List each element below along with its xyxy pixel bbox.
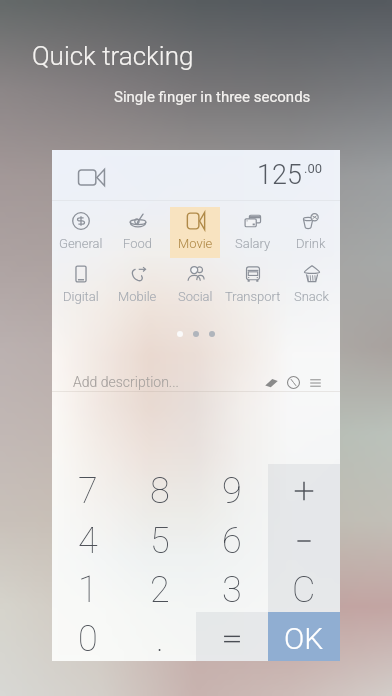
button[interactable]: 2 bbox=[124, 563, 196, 612]
staticText: 2 bbox=[150, 569, 170, 611]
button[interactable]: Mobile bbox=[113, 260, 162, 311]
staticText: 3 bbox=[222, 569, 242, 611]
button[interactable]: OK bbox=[268, 612, 340, 661]
staticText: Movie bbox=[178, 236, 213, 251]
staticText: 7 bbox=[78, 470, 98, 512]
staticText: .00 bbox=[304, 161, 323, 176]
button[interactable]: Transport bbox=[228, 260, 278, 311]
button[interactable]: 1 bbox=[52, 563, 124, 612]
button[interactable]: 0 bbox=[52, 612, 124, 661]
staticText: 1 bbox=[78, 569, 98, 611]
staticText: 6 bbox=[222, 520, 242, 562]
button[interactable]: Movie bbox=[170, 207, 220, 258]
button[interactable]: General bbox=[56, 207, 105, 258]
button[interactable] bbox=[268, 514, 340, 563]
staticText: Mobile bbox=[118, 289, 157, 304]
button[interactable]: . bbox=[124, 612, 196, 661]
staticText: Quick tracking bbox=[32, 41, 194, 71]
staticText: C bbox=[292, 569, 316, 611]
staticText: Drink bbox=[296, 236, 326, 251]
button[interactable]: 125 bbox=[257, 159, 323, 191]
staticText: General bbox=[59, 236, 103, 251]
button[interactable]: 8 bbox=[124, 464, 196, 514]
staticText: . bbox=[156, 618, 164, 660]
staticText: Single finger in three seconds bbox=[114, 88, 311, 106]
button[interactable]: Time bbox=[283, 372, 304, 393]
button[interactable]: 3 bbox=[196, 563, 268, 612]
button[interactable]: Selected category Movie bbox=[71, 155, 111, 199]
staticText: 8 bbox=[150, 470, 170, 512]
button[interactable]: C bbox=[268, 563, 340, 612]
button[interactable]: Add description... bbox=[73, 374, 261, 390]
button[interactable]: Digital bbox=[56, 260, 105, 311]
staticText: 125 bbox=[257, 159, 302, 191]
staticText: Food bbox=[123, 236, 152, 251]
button[interactable]: Snack bbox=[286, 260, 336, 311]
staticText: Snack bbox=[294, 289, 329, 304]
button[interactable]: 6 bbox=[196, 514, 268, 563]
staticText: OK bbox=[284, 621, 324, 656]
button[interactable]: Social bbox=[170, 260, 220, 311]
staticText: 4 bbox=[78, 520, 98, 562]
button[interactable]: Food bbox=[113, 207, 162, 258]
button[interactable]: 5 bbox=[124, 514, 196, 563]
button[interactable]: Tag bbox=[261, 372, 282, 393]
button[interactable] bbox=[268, 464, 340, 514]
button[interactable]: Menu bbox=[305, 372, 326, 393]
staticText: Social bbox=[178, 289, 213, 304]
button[interactable]: 9 bbox=[196, 464, 268, 514]
staticText: Digital bbox=[63, 289, 99, 304]
staticText: Salary bbox=[235, 236, 271, 251]
button[interactable] bbox=[196, 612, 268, 661]
staticText: Transport bbox=[225, 289, 281, 304]
staticText: 9 bbox=[222, 470, 242, 512]
button[interactable]: 4 bbox=[52, 514, 124, 563]
staticText: 0 bbox=[78, 618, 98, 660]
button[interactable]: Salary bbox=[228, 207, 278, 258]
button[interactable]: 7 bbox=[52, 464, 124, 514]
staticText: 5 bbox=[150, 520, 170, 562]
button[interactable]: Drink bbox=[286, 207, 336, 258]
